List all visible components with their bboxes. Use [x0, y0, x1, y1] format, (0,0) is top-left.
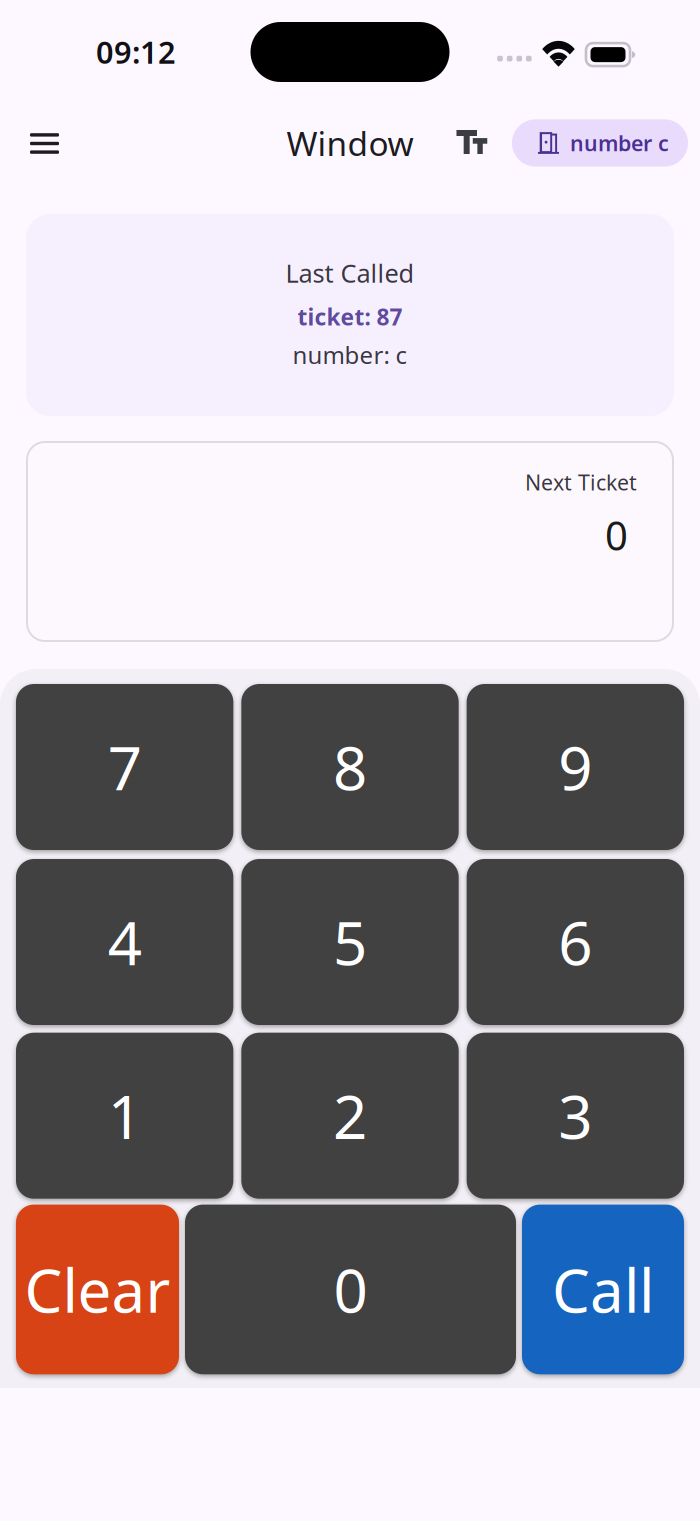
- button[interactable]: 5: [241, 859, 459, 1025]
- button[interactable]: 9: [467, 684, 684, 850]
- staticText: 9: [558, 727, 592, 807]
- staticText: 7: [108, 727, 142, 807]
- button[interactable]: Call: [522, 1205, 684, 1374]
- button[interactable]: 4: [16, 859, 233, 1025]
- staticText: 5: [333, 902, 367, 982]
- button[interactable]: Clear: [16, 1205, 179, 1374]
- button[interactable]: 7: [16, 684, 233, 850]
- staticText: 2: [333, 1076, 367, 1156]
- staticText: Last Called: [285, 256, 414, 290]
- button[interactable]: 2: [241, 1033, 459, 1199]
- button[interactable]: 8: [241, 684, 459, 850]
- staticText: 1: [108, 1076, 142, 1156]
- button[interactable]: Menu: [0, 106, 60, 168]
- button[interactable]: 1: [16, 1033, 233, 1199]
- staticText: 8: [333, 727, 367, 807]
- staticText: Clear: [24, 1250, 170, 1329]
- staticText: Window: [286, 121, 413, 165]
- staticText: 0: [333, 1250, 367, 1329]
- staticText: number c: [570, 129, 669, 157]
- button[interactable]: number c: [512, 113, 688, 161]
- button[interactable]: 3: [467, 1033, 684, 1199]
- staticText: 4: [108, 902, 142, 982]
- button[interactable]: 0: [185, 1205, 516, 1374]
- staticText: 09:12: [96, 31, 176, 72]
- button[interactable]: Text size: [460, 106, 512, 168]
- staticText: number: c: [292, 339, 407, 371]
- staticText: ticket: 87: [297, 302, 402, 332]
- staticText: 0: [605, 508, 628, 561]
- staticText: Call: [552, 1250, 654, 1329]
- staticText: 3: [558, 1076, 592, 1156]
- staticText: Next Ticket: [525, 468, 637, 496]
- button[interactable]: 6: [467, 859, 684, 1025]
- staticText: 6: [558, 902, 592, 982]
